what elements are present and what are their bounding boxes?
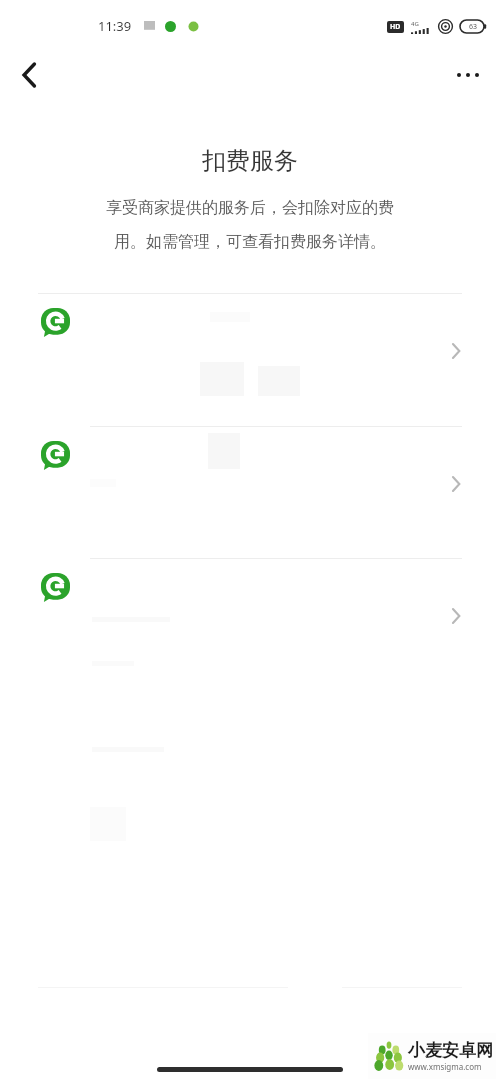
button[interactable] bbox=[0, 559, 500, 859]
button[interactable] bbox=[0, 294, 500, 427]
staticText: HD bbox=[390, 22, 401, 32]
staticText: 小麦安卓网 bbox=[408, 1040, 493, 1061]
staticText: 11:39 bbox=[98, 17, 132, 35]
button[interactable]: Back bbox=[8, 54, 50, 96]
button[interactable] bbox=[0, 427, 500, 559]
button[interactable]: More options bbox=[446, 53, 490, 97]
staticText: 享受商家提供的服务后，会扣除对应的费 用。如需管理，可查看扣费服务详情。 bbox=[44, 198, 456, 251]
staticText: 63 bbox=[469, 22, 478, 32]
staticText: www.xmsigma.com bbox=[408, 1061, 482, 1072]
staticText: 4G bbox=[411, 20, 419, 28]
staticText: 扣费服务 bbox=[0, 146, 500, 176]
